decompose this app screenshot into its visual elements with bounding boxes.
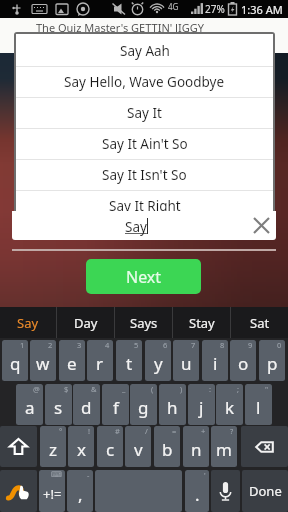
button[interactable]: Done — [242, 470, 288, 512]
button[interactable]: + — [183, 426, 209, 467]
staticText: . — [195, 483, 200, 506]
staticText: # — [115, 426, 120, 436]
staticText: : — [209, 384, 212, 394]
staticText: v — [134, 438, 143, 461]
button[interactable]: Next — [86, 259, 201, 294]
button[interactable]: Say It Right — [16, 191, 273, 212]
button[interactable]: 1 — [2, 340, 28, 381]
staticText: d — [81, 396, 92, 419]
button[interactable]: Say Hello, Wave Goodbye — [16, 67, 273, 97]
staticText: e — [67, 352, 77, 375]
staticText: @ — [33, 384, 40, 394]
button[interactable]: ( — [130, 384, 157, 425]
staticText: 8 — [220, 340, 225, 350]
staticText: 1 — [20, 340, 25, 350]
staticText: a — [25, 396, 35, 419]
staticText: Say It Isn't So — [102, 166, 187, 184]
staticText: t — [126, 352, 133, 375]
staticText: _ — [122, 384, 126, 394]
staticText: j — [199, 396, 204, 419]
staticText: ' — [204, 470, 206, 480]
staticText: 7 — [191, 340, 196, 350]
button[interactable]: / — [125, 426, 151, 467]
button[interactable]: : — [188, 384, 215, 425]
staticText: The Quiz Master's GETTIN' JIGGY — [36, 20, 205, 35]
staticText: 2 — [48, 340, 53, 350]
staticText: ⌨ — [51, 470, 62, 479]
button[interactable]: 2 — [30, 340, 56, 381]
button[interactable]: Stay — [173, 307, 230, 338]
button[interactable]: $ — [45, 384, 72, 425]
button[interactable]: ? — [211, 426, 237, 467]
staticText: 5 — [134, 340, 139, 350]
staticText: - — [87, 470, 90, 480]
button[interactable]: = — [154, 426, 180, 467]
staticText: , — [78, 483, 83, 506]
button[interactable]: 4 — [87, 340, 113, 381]
staticText: ° — [59, 426, 63, 436]
button[interactable]: Say — [12, 211, 276, 240]
button[interactable]: ° — [40, 426, 66, 467]
button[interactable]: ! — [68, 426, 94, 467]
button[interactable]: 0 — [259, 340, 285, 381]
staticText: y — [154, 352, 163, 375]
staticText: o — [238, 352, 249, 375]
button[interactable]: 6 — [145, 340, 171, 381]
staticText: f — [113, 396, 119, 419]
button[interactable]: 3 — [59, 340, 85, 381]
button[interactable]: ⌨ — [39, 470, 65, 512]
button[interactable]: ' — [185, 470, 209, 512]
staticText: ) — [180, 384, 183, 394]
staticText: $ — [64, 384, 69, 394]
staticText: Says — [130, 314, 158, 332]
button[interactable]: ) — [159, 384, 186, 425]
button[interactable]: 8 — [202, 340, 228, 381]
button[interactable]: Say It Isn't So — [16, 160, 273, 190]
button[interactable]: Say Aah — [16, 36, 273, 66]
button[interactable]: Say — [0, 307, 56, 338]
staticText: Next — [126, 266, 162, 288]
staticText: m — [216, 438, 232, 461]
staticText: 1:36 AM — [241, 2, 283, 17]
staticText: Done — [249, 482, 282, 500]
button[interactable]: Backspace — [241, 426, 288, 467]
staticText: g — [138, 396, 149, 419]
button[interactable]: & — [73, 384, 100, 425]
staticText: 0 — [277, 340, 282, 350]
button[interactable]: @ — [16, 384, 43, 425]
staticText: p — [267, 352, 278, 375]
staticText: 27% — [205, 2, 225, 16]
button[interactable]: " — [245, 384, 272, 425]
button[interactable]: # — [97, 426, 123, 467]
button[interactable]: Voice input — [211, 470, 240, 512]
button[interactable]: Say It — [16, 98, 273, 128]
button[interactable]: ; — [216, 384, 243, 425]
button[interactable]: Says — [115, 307, 172, 338]
staticText: ( — [151, 384, 154, 394]
button[interactable]: Sat — [231, 307, 288, 338]
button[interactable]: 7 — [173, 340, 199, 381]
staticText: n — [191, 438, 202, 461]
button[interactable]: Day — [57, 307, 114, 338]
button[interactable]: Say It Ain't So — [16, 129, 273, 159]
staticText: / — [145, 426, 148, 436]
staticText: Say Hello, Wave Goodbye — [64, 73, 225, 91]
staticText: q — [10, 352, 21, 375]
staticText: s — [54, 396, 63, 419]
button[interactable]: _ — [102, 384, 129, 425]
staticText: r — [96, 352, 104, 375]
button[interactable]: 9 — [230, 340, 256, 381]
staticText: = — [172, 426, 177, 436]
button[interactable]: Clear text — [239, 211, 276, 240]
staticText: Say — [17, 314, 39, 332]
staticText: k — [225, 396, 235, 419]
button[interactable]: Swipe typing — [0, 470, 37, 512]
staticText: h — [167, 396, 178, 419]
staticText: " — [265, 384, 269, 394]
staticText: 4G — [168, 1, 179, 12]
button[interactable]: 5 — [116, 340, 142, 381]
button[interactable]: Shift — [0, 426, 37, 467]
button[interactable]: - — [67, 470, 93, 512]
staticText: Say Aah — [120, 42, 170, 60]
